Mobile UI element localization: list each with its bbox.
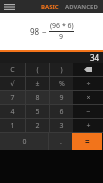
staticText: 34 — [90, 52, 100, 63]
button[interactable]: × — [73, 91, 103, 104]
button[interactable]: 9 — [50, 91, 73, 104]
staticText: ± — [35, 79, 40, 89]
button[interactable]: 1 — [0, 119, 25, 132]
button[interactable]: ) — [50, 63, 73, 76]
button[interactable]: 4 — [0, 105, 25, 118]
button[interactable]: = — [72, 133, 102, 150]
staticText: 9 — [59, 32, 64, 42]
button[interactable]: ± — [26, 77, 49, 90]
button[interactable]: ÷ — [73, 77, 103, 90]
button[interactable]: 3 — [50, 119, 73, 132]
staticText: 5 — [35, 107, 40, 117]
button[interactable]: 2 — [26, 119, 49, 132]
staticText: √ — [10, 80, 15, 88]
button[interactable]: ADVANCED — [63, 3, 100, 11]
staticText: ÷ — [86, 79, 91, 89]
staticText: ) — [60, 65, 63, 75]
button[interactable]: − — [73, 105, 103, 118]
button[interactable]: BASIC — [39, 3, 61, 11]
staticText: 6 — [59, 107, 64, 117]
staticText: 7 — [10, 93, 15, 103]
button[interactable]: ( — [26, 63, 49, 76]
staticText: 4 — [10, 107, 15, 117]
staticText: 3 — [59, 121, 64, 131]
staticText: C — [10, 65, 15, 75]
staticText: 0 — [22, 137, 27, 147]
staticText: − — [86, 107, 91, 117]
staticText: = — [85, 136, 90, 147]
button[interactable]: C — [0, 63, 25, 76]
button[interactable]: 7 — [0, 91, 25, 104]
staticText: 98 — [30, 26, 40, 37]
button[interactable]: Menu — [3, 0, 16, 13]
staticText: 9 — [59, 93, 64, 103]
staticText: ( — [36, 65, 39, 75]
button[interactable]: 5 — [26, 105, 49, 118]
button[interactable]: 6 — [50, 105, 73, 118]
staticText: + — [86, 121, 91, 131]
staticText: 8 — [35, 93, 40, 103]
staticText: (96 * 6) — [50, 21, 74, 31]
staticText: − — [42, 26, 47, 37]
staticText: 2 — [35, 121, 40, 131]
staticText: % — [59, 79, 65, 89]
staticText: ADVANCED — [65, 3, 98, 11]
button[interactable]: √ — [0, 77, 25, 90]
button[interactable]: + — [73, 119, 103, 132]
staticText: BASIC — [41, 3, 59, 11]
button[interactable]: Backspace — [73, 63, 103, 76]
staticText: . — [60, 137, 62, 147]
button[interactable]: % — [50, 77, 73, 90]
staticText: × — [86, 93, 91, 103]
staticText: 1 — [10, 121, 15, 131]
button[interactable]: 8 — [26, 91, 49, 104]
button[interactable]: 0 — [0, 133, 48, 150]
